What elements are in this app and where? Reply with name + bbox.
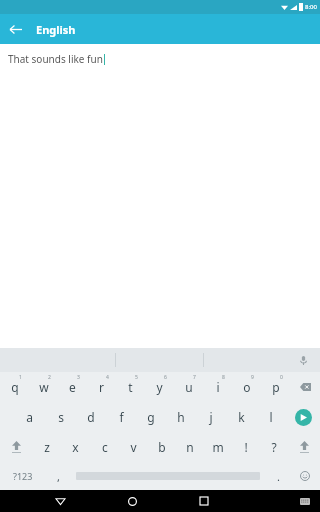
staticText: 3 — [77, 374, 80, 381]
button[interactable]: t — [116, 372, 145, 402]
staticText: i — [216, 379, 220, 395]
staticText: 9 — [251, 374, 254, 381]
button[interactable]: , — [46, 462, 70, 490]
button[interactable]: w — [29, 372, 58, 402]
button[interactable]: Voice input — [294, 351, 312, 369]
staticText: u — [185, 379, 193, 395]
button[interactable]: Back — [0, 14, 30, 44]
staticText: 7 — [193, 374, 196, 381]
button[interactable]: y — [145, 372, 174, 402]
staticText: English — [36, 22, 76, 37]
button[interactable]: h — [166, 402, 196, 432]
staticText: a — [26, 409, 33, 425]
staticText: z — [44, 439, 50, 455]
staticText: v — [130, 439, 137, 455]
button[interactable]: d — [76, 402, 106, 432]
button[interactable]: r — [87, 372, 116, 402]
staticText: w — [39, 379, 49, 395]
staticText: y — [156, 379, 163, 395]
staticText: 8 — [222, 374, 225, 381]
staticText: . — [277, 469, 280, 484]
staticText: n — [186, 439, 194, 455]
staticText: 5 — [135, 374, 138, 381]
button[interactable]: e — [58, 372, 87, 402]
staticText: p — [272, 379, 280, 395]
staticText: r — [99, 379, 104, 395]
staticText: , — [57, 469, 60, 484]
staticText: q — [11, 379, 19, 395]
button[interactable]: i — [203, 372, 232, 402]
staticText: s — [58, 409, 64, 425]
staticText: f — [119, 409, 124, 425]
button[interactable]: z — [32, 432, 61, 462]
staticText: ! — [244, 439, 248, 455]
staticText: ? — [271, 439, 277, 455]
staticText: g — [147, 409, 155, 425]
button[interactable]: o — [232, 372, 261, 402]
button[interactable]: s — [45, 402, 76, 432]
button[interactable]: x — [61, 432, 90, 462]
button[interactable]: Shift — [0, 432, 32, 462]
button[interactable]: Backspace — [290, 372, 320, 402]
button[interactable]: ! — [232, 432, 260, 462]
staticText: That sounds like fun — [8, 52, 103, 66]
button[interactable]: Shift — [288, 432, 320, 462]
button[interactable]: ? — [260, 432, 288, 462]
staticText: j — [209, 409, 213, 425]
staticText: t — [128, 379, 133, 395]
staticText: 4 — [106, 374, 109, 381]
staticText: ?123 — [13, 470, 33, 482]
button[interactable]: n — [176, 432, 204, 462]
staticText: l — [269, 409, 273, 425]
button[interactable]: l — [256, 402, 286, 432]
staticText: 0 — [280, 374, 283, 381]
button[interactable]: Send — [286, 402, 320, 432]
staticText: d — [87, 409, 95, 425]
button[interactable]: ?123 — [0, 462, 46, 490]
button[interactable]: g — [136, 402, 166, 432]
button[interactable]: Space — [70, 462, 266, 490]
button[interactable]: Back — [49, 490, 71, 512]
button[interactable]: p — [261, 372, 290, 402]
staticText: 6 — [164, 374, 167, 381]
staticText: c — [102, 439, 108, 455]
staticText: 1 — [19, 374, 22, 381]
button[interactable]: Home — [121, 490, 143, 512]
staticText: h — [177, 409, 185, 425]
staticText: 8:00 — [305, 3, 317, 11]
staticText: e — [69, 379, 76, 395]
button[interactable]: f — [106, 402, 136, 432]
button[interactable]: u — [174, 372, 203, 402]
button[interactable]: k — [226, 402, 256, 432]
button[interactable]: Switch keyboard — [294, 490, 316, 512]
staticText: x — [72, 439, 79, 455]
button[interactable]: a — [14, 402, 45, 432]
button[interactable]: Emoji — [290, 462, 320, 490]
button[interactable]: b — [148, 432, 176, 462]
button[interactable]: . — [266, 462, 290, 490]
button[interactable]: j — [196, 402, 226, 432]
staticText: m — [212, 439, 224, 455]
button[interactable]: q — [0, 372, 29, 402]
staticText: k — [238, 409, 245, 425]
button[interactable]: Recents — [193, 490, 215, 512]
button[interactable]: c — [90, 432, 119, 462]
button[interactable]: v — [119, 432, 148, 462]
button[interactable]: m — [204, 432, 232, 462]
staticText: 2 — [48, 374, 51, 381]
staticText: o — [243, 379, 251, 395]
staticText: b — [158, 439, 166, 455]
